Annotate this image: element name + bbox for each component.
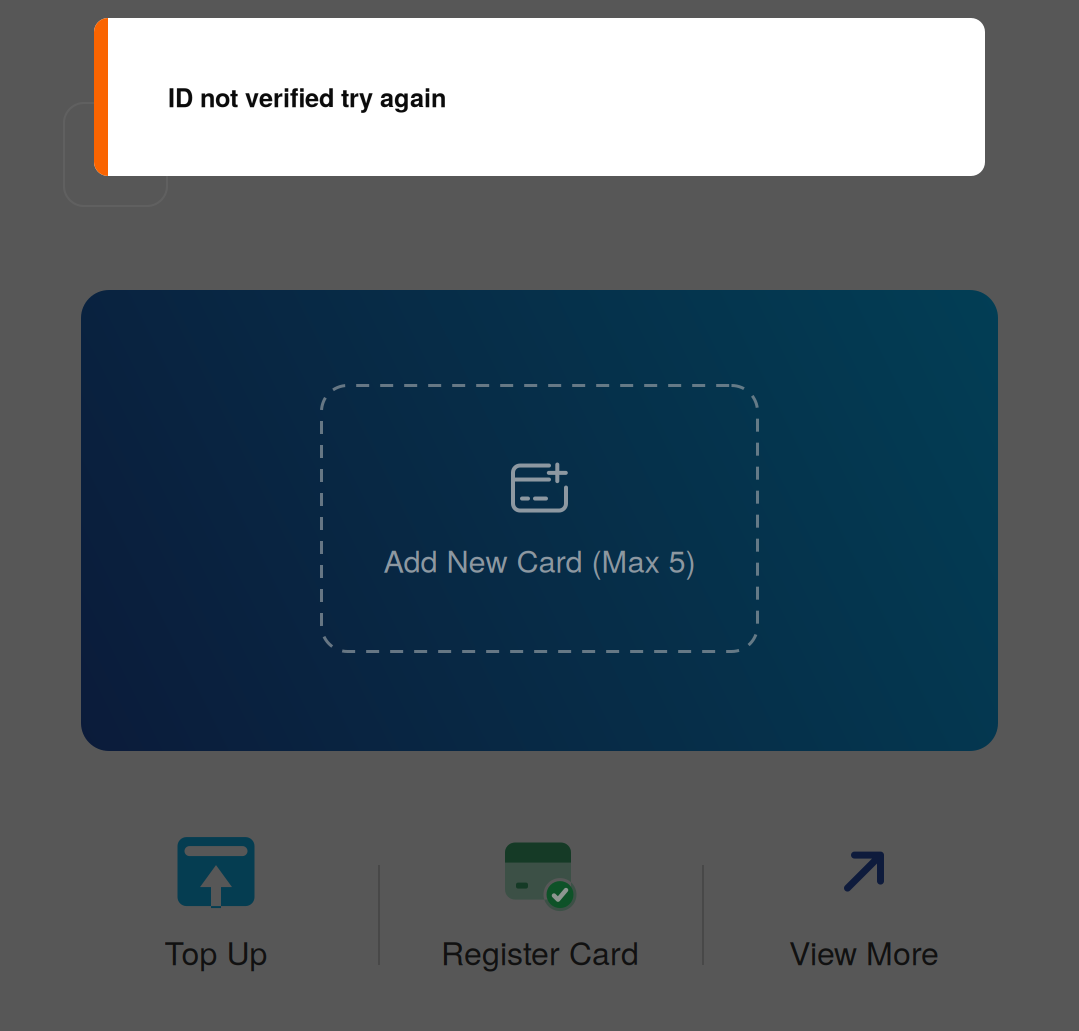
staticText: Register Card	[441, 929, 639, 974]
staticText: Add New Card (Max 5)	[383, 537, 695, 581]
button[interactable]: ID not verified try again	[94, 18, 985, 176]
staticText: Top Up	[164, 929, 267, 974]
button[interactable]: Add New Card (Max 5)	[321, 385, 757, 651]
staticText: ID not verified try again	[168, 79, 446, 115]
button[interactable]: Top Up	[54, 829, 378, 977]
button[interactable]: View More	[702, 829, 1026, 977]
button[interactable]: Register Card	[378, 829, 702, 977]
staticText: View More	[789, 929, 939, 974]
